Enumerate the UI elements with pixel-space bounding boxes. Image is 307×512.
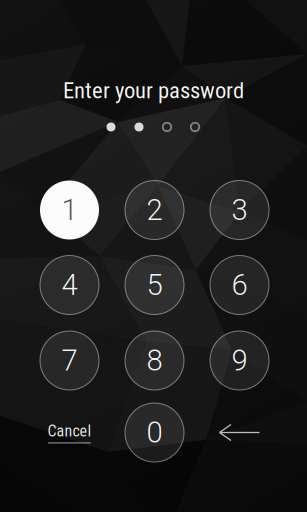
staticText: 8	[146, 343, 162, 378]
button[interactable]: 3	[210, 180, 269, 239]
button[interactable]: 7	[40, 331, 99, 390]
staticText: 1	[61, 193, 77, 227]
staticText: 3	[231, 193, 247, 227]
button[interactable]: 5	[125, 255, 184, 314]
staticText: 0	[146, 415, 162, 450]
button[interactable]: 0	[125, 403, 184, 462]
staticText: 4	[61, 268, 77, 302]
staticText: 2	[146, 193, 162, 227]
button[interactable]: 2	[125, 180, 184, 239]
staticText: 5	[146, 268, 162, 302]
staticText: Enter your password	[63, 77, 244, 104]
staticText: 9	[231, 343, 247, 378]
button[interactable]: Delete	[203, 408, 275, 456]
button[interactable]: Cancel	[33, 408, 105, 456]
button[interactable]: 6	[210, 255, 269, 314]
button[interactable]: 4	[40, 255, 99, 314]
staticText: 6	[231, 268, 247, 302]
staticText: 7	[61, 343, 77, 378]
button[interactable]: 1	[40, 180, 99, 239]
button[interactable]: 8	[125, 331, 184, 390]
staticText: Cancel	[47, 422, 91, 440]
button[interactable]: 9	[210, 331, 269, 390]
